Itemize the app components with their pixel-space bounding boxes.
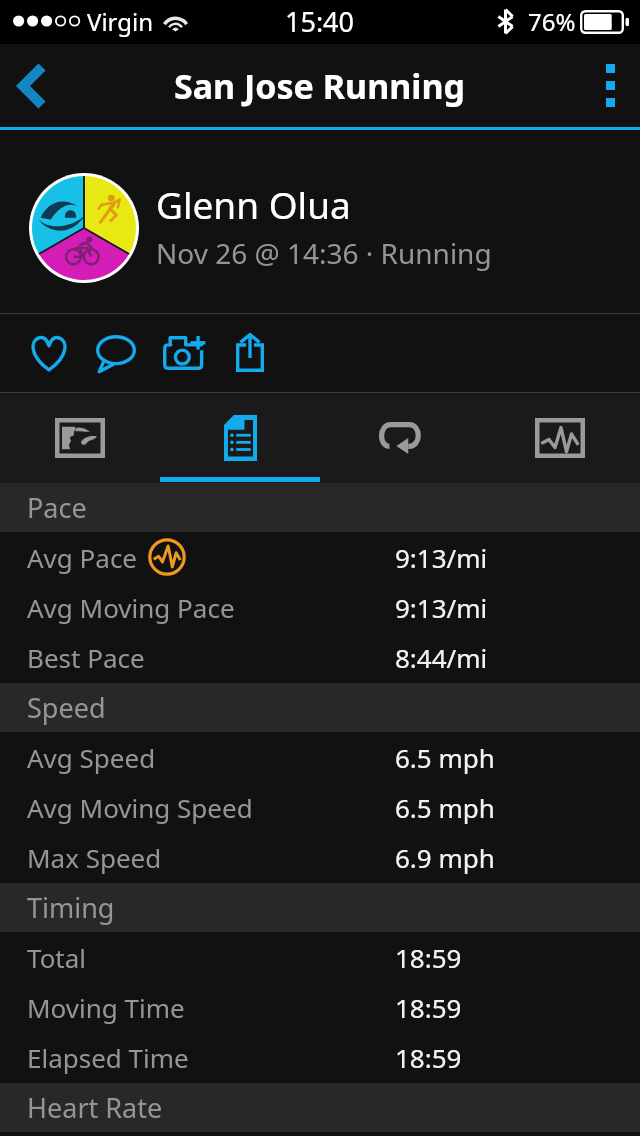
staticText: Avg Speed [27,740,156,775]
staticText: Avg Pace [27,540,138,575]
staticText: Moving Time [27,990,185,1025]
button[interactable]: Best Pace [0,632,640,683]
staticText: Speed [27,689,106,726]
button[interactable]: Avg Moving Speed [0,782,640,832]
button[interactable]: Like [14,314,83,392]
staticText: Pace [27,489,87,526]
staticText: Elapsed Time [27,1040,189,1075]
staticText: Avg Moving Speed [27,790,253,825]
button[interactable]: Back [0,44,64,127]
staticText: 18:59 [395,1040,462,1075]
button[interactable]: Glenn Olua [0,130,640,313]
button[interactable]: Elapsed Time [0,1032,640,1083]
staticText: 15:40 [285,3,355,40]
button[interactable]: Laps [320,393,480,483]
staticText: 9:13/mi [395,540,488,575]
staticText: Total [27,940,87,975]
staticText: Nov 26 @ 14:36 · Running [156,234,492,272]
staticText: Virgin [87,5,154,38]
button[interactable]: Avg Pace [0,532,640,582]
button[interactable]: Details [160,393,320,483]
button[interactable]: Moving Time [0,982,640,1032]
staticText: 8:44/mi [395,640,488,675]
staticText: 6.5 mph [395,790,495,825]
button[interactable]: Total [0,932,640,982]
button[interactable]: Map [0,393,160,483]
button[interactable]: Avg Speed [0,732,640,782]
staticText: 18:59 [395,990,462,1025]
staticText: Avg Moving Pace [27,590,235,625]
staticText: Max Speed [27,840,162,875]
button[interactable]: Avg Moving Pace [0,582,640,632]
staticText: 6.9 mph [395,840,495,875]
button[interactable]: Comment [82,314,150,392]
button[interactable]: More options [580,44,640,127]
staticText: Timing [27,889,115,926]
staticText: 6.5 mph [395,740,495,775]
staticText: Glenn Olua [156,179,351,229]
button[interactable]: Add photo [150,314,218,392]
staticText: 76% [528,5,576,38]
staticText: San Jose Running [174,63,466,109]
staticText: Heart Rate [27,1089,163,1126]
button[interactable]: Charts [480,393,640,483]
staticText: Best Pace [27,640,145,675]
staticText: 18:59 [395,940,462,975]
staticText: 9:13/mi [395,590,488,625]
button[interactable]: Max Speed [0,832,640,883]
button[interactable]: Share [216,314,284,392]
